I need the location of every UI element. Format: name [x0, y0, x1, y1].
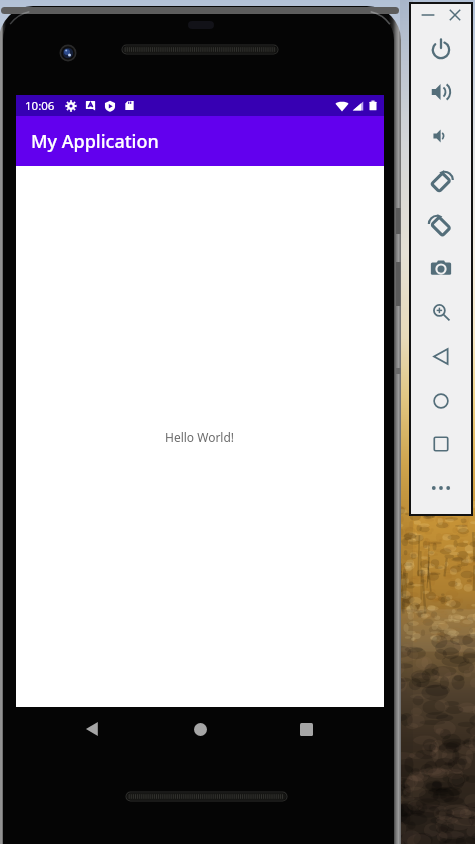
staticText: 10:06	[25, 98, 55, 114]
button[interactable]: Screenshot	[424, 251, 458, 285]
button[interactable]: Minimize	[411, 0, 445, 32]
staticText: Hello World!	[165, 429, 235, 445]
button[interactable]: Back	[73, 709, 113, 749]
button[interactable]: Zoom	[424, 295, 458, 329]
staticText: My Application	[31, 129, 159, 154]
button[interactable]: Recents	[286, 709, 326, 749]
button[interactable]: Close	[438, 0, 472, 32]
button[interactable]: Home	[424, 384, 458, 418]
button[interactable]: Rotate right	[424, 207, 458, 241]
button[interactable]: Back	[424, 339, 458, 373]
button[interactable]: My Application	[16, 116, 384, 166]
button[interactable]: Volume down	[424, 119, 458, 153]
button[interactable]: More	[424, 471, 458, 505]
button[interactable]: Rotate left	[424, 163, 458, 197]
button[interactable]: Overview	[424, 427, 458, 461]
button[interactable]: Power	[424, 32, 458, 66]
button[interactable]: Home	[180, 709, 220, 749]
button[interactable]: Volume up	[424, 75, 458, 109]
